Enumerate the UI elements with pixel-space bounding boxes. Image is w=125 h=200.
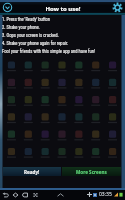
button[interactable]: Collapse	[2, 2, 13, 13]
staticText: 4. Shake your phone again for repair.	[2, 41, 69, 46]
staticText: Ready!	[24, 169, 40, 175]
button[interactable]: Settings	[112, 2, 123, 13]
button[interactable]: Home	[10, 190, 20, 199]
button[interactable]: Recents	[20, 190, 30, 199]
button[interactable]: Ready!	[3, 167, 61, 176]
staticText: More Screens	[76, 169, 107, 175]
button[interactable]: Expand status bar	[57, 193, 64, 197]
staticText: How to use!	[45, 5, 81, 13]
staticText: 3. Oops your screen is cracked.	[2, 33, 59, 38]
staticText: 2. Shake your phone.	[2, 25, 40, 30]
staticText: 03:35	[99, 191, 112, 198]
button[interactable]: Back	[0, 190, 10, 199]
button[interactable]: Apps	[30, 190, 40, 199]
staticText: Fool your friends with this simple app a…	[2, 49, 96, 54]
button[interactable]: More Screens	[62, 167, 121, 176]
staticText: 1. Press the 'Ready' button	[2, 17, 50, 22]
